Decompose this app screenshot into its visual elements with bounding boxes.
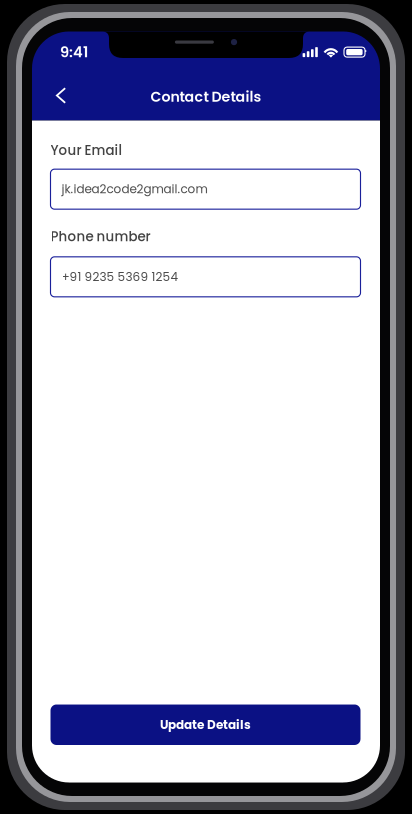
staticText: Phone number — [50, 227, 150, 246]
staticText: jk.idea2code2gmail.com — [61, 181, 207, 198]
button[interactable]: Update Details — [50, 704, 360, 745]
staticText: Your Email — [50, 141, 122, 160]
staticText: Update Details — [160, 716, 251, 733]
staticText: Contact Details — [150, 87, 261, 107]
staticText: 9:41 — [60, 42, 88, 62]
button[interactable]: Back — [42, 76, 80, 114]
staticText: +91 9235 5369 1254 — [61, 268, 178, 285]
